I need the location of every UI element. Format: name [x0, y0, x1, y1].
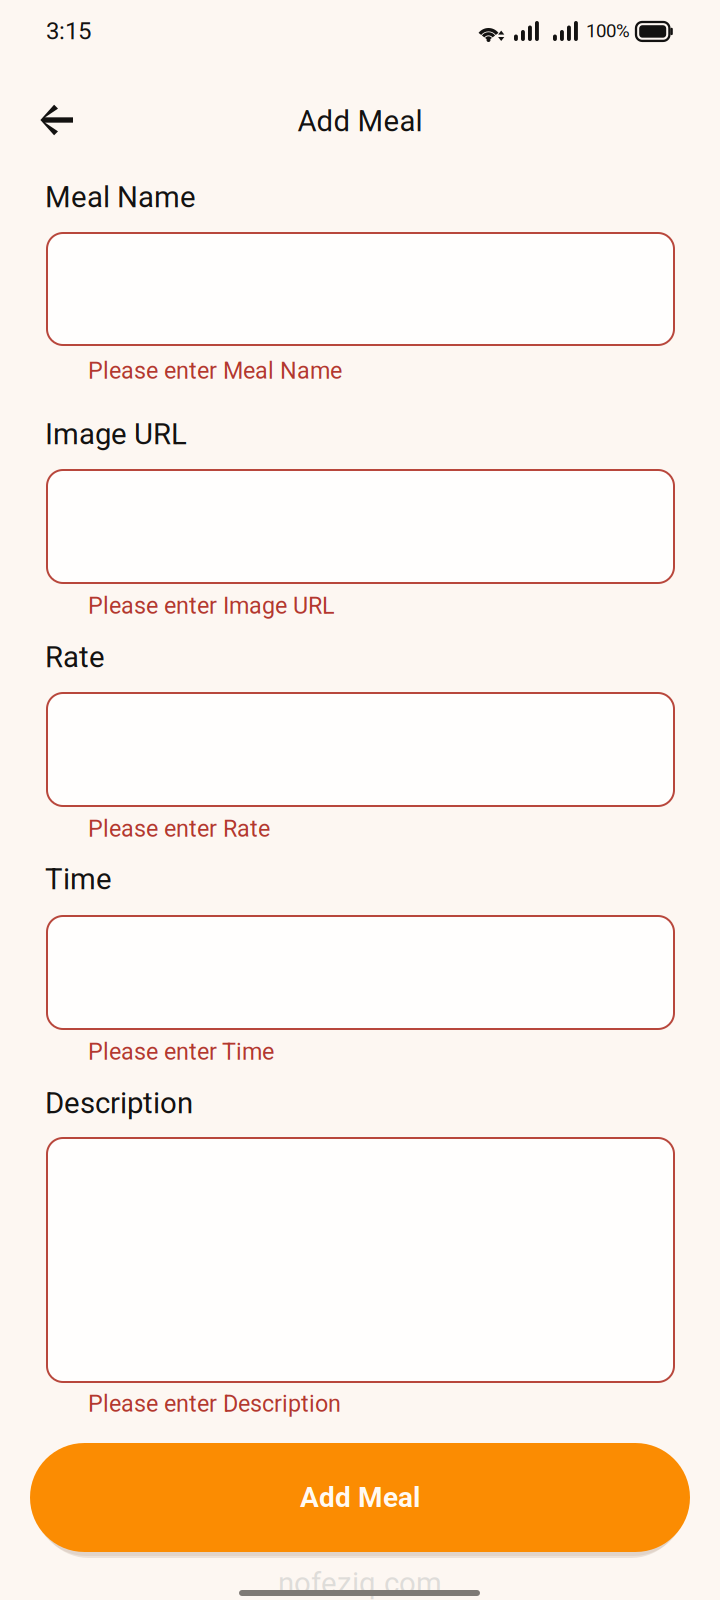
staticText: 100%	[586, 20, 630, 42]
staticText: Description	[45, 1086, 193, 1120]
staticText: Meal Name	[45, 180, 196, 214]
staticText: Image URL	[45, 417, 187, 451]
staticText: Please enter Image URL	[88, 592, 335, 619]
staticText: Add Meal	[300, 1481, 420, 1514]
staticText: 3:15	[46, 17, 91, 45]
staticText: Time	[45, 862, 112, 896]
button[interactable]: Add Meal	[30, 1443, 690, 1552]
staticText: Please enter Meal Name	[88, 357, 342, 384]
staticText: Rate	[45, 640, 105, 674]
staticText: Please enter Rate	[88, 815, 270, 842]
staticText: Please enter Description	[88, 1390, 341, 1417]
staticText: Add Meal	[297, 104, 422, 138]
staticText: Please enter Time	[88, 1038, 274, 1065]
button[interactable]: Back	[0, 0, 95, 66]
staticText: nofeziq.com	[278, 1566, 442, 1600]
